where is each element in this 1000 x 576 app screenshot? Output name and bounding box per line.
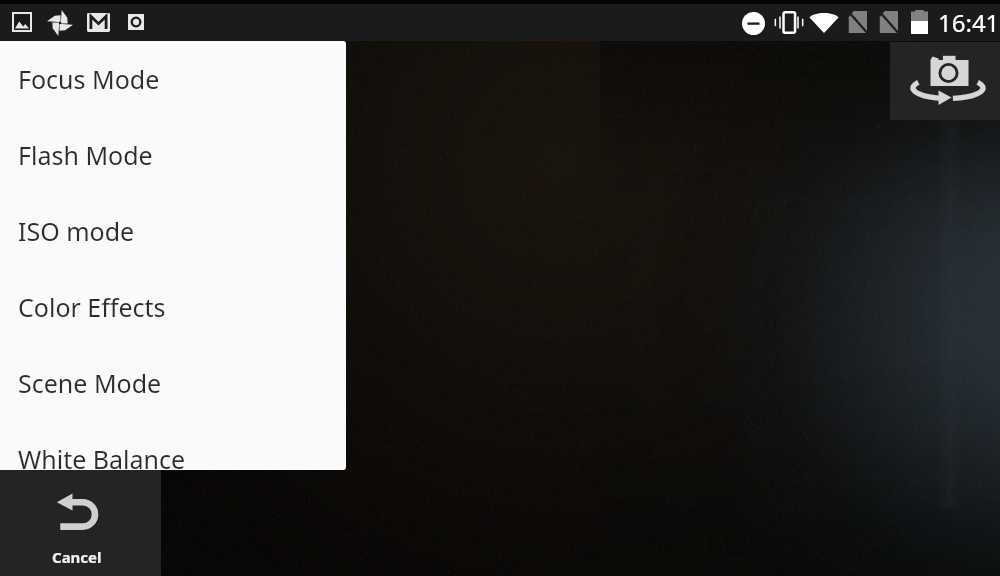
button[interactable]: Switch camera [890, 42, 1000, 120]
button[interactable]: Cancel [0, 470, 161, 576]
staticText: Cancel [52, 547, 102, 567]
button[interactable]: Scene Mode [0, 345, 346, 421]
button[interactable]: Focus Mode [0, 41, 346, 117]
staticText: Color Effects [18, 290, 166, 324]
staticText: 16:41 [938, 6, 1000, 39]
button[interactable]: ISO mode [0, 193, 346, 269]
staticText: Scene Mode [18, 366, 162, 400]
staticText: White Balance [18, 442, 186, 470]
staticText: Focus Mode [18, 62, 160, 96]
button[interactable]: Flash Mode [0, 117, 346, 193]
button[interactable]: White Balance [0, 421, 346, 470]
staticText: ISO mode [18, 214, 135, 248]
staticText: Flash Mode [18, 138, 153, 172]
button[interactable]: Color Effects [0, 269, 346, 345]
